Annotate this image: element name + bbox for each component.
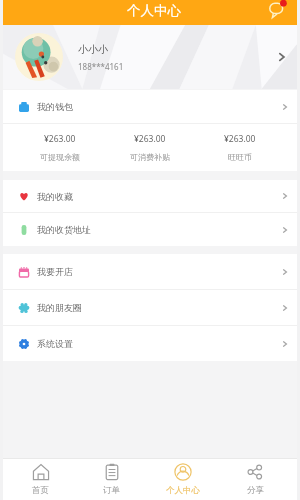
- button[interactable]: Messages: [269, 0, 289, 20]
- staticText: 旺旺币: [228, 152, 252, 162]
- button[interactable]: ¥263.00: [15, 124, 105, 171]
- button[interactable]: 我的朋友圈: [3, 290, 297, 325]
- staticText: ¥263.00: [134, 133, 166, 145]
- staticText: 我的收藏: [37, 191, 73, 202]
- staticText: 我的收货地址: [37, 224, 91, 235]
- staticText: 我的朋友圈: [37, 302, 82, 313]
- staticText: 分享: [247, 485, 264, 496]
- staticText: 个人中心: [127, 2, 181, 19]
- button[interactable]: ¥263.00: [105, 124, 195, 171]
- staticText: 订单: [103, 485, 120, 496]
- button[interactable]: 我的钱包: [3, 90, 297, 123]
- button[interactable]: 系统设置: [3, 326, 297, 361]
- button[interactable]: 分享: [219, 459, 291, 500]
- button[interactable]: 我的收藏: [3, 180, 297, 212]
- button[interactable]: 订单: [76, 459, 147, 500]
- staticText: 系统设置: [37, 338, 73, 349]
- staticText: 个人中心: [166, 485, 200, 496]
- staticText: ¥263.00: [44, 133, 76, 145]
- button[interactable]: 个人中心: [147, 459, 219, 500]
- button[interactable]: 我的收货地址: [3, 213, 297, 246]
- staticText: 小小小: [78, 43, 108, 56]
- staticText: 可消费补贴: [130, 152, 170, 162]
- button[interactable]: ¥263.00: [195, 124, 285, 171]
- staticText: 可提现余额: [40, 152, 80, 162]
- staticText: 我要开店: [37, 266, 73, 277]
- button[interactable]: 首页: [5, 459, 76, 500]
- staticText: ¥263.00: [224, 133, 256, 145]
- staticText: 我的钱包: [37, 101, 73, 112]
- button[interactable]: 小小小: [3, 25, 297, 89]
- staticText: 188***4161: [78, 61, 124, 72]
- button[interactable]: 我要开店: [3, 254, 297, 289]
- staticText: 首页: [32, 485, 49, 496]
